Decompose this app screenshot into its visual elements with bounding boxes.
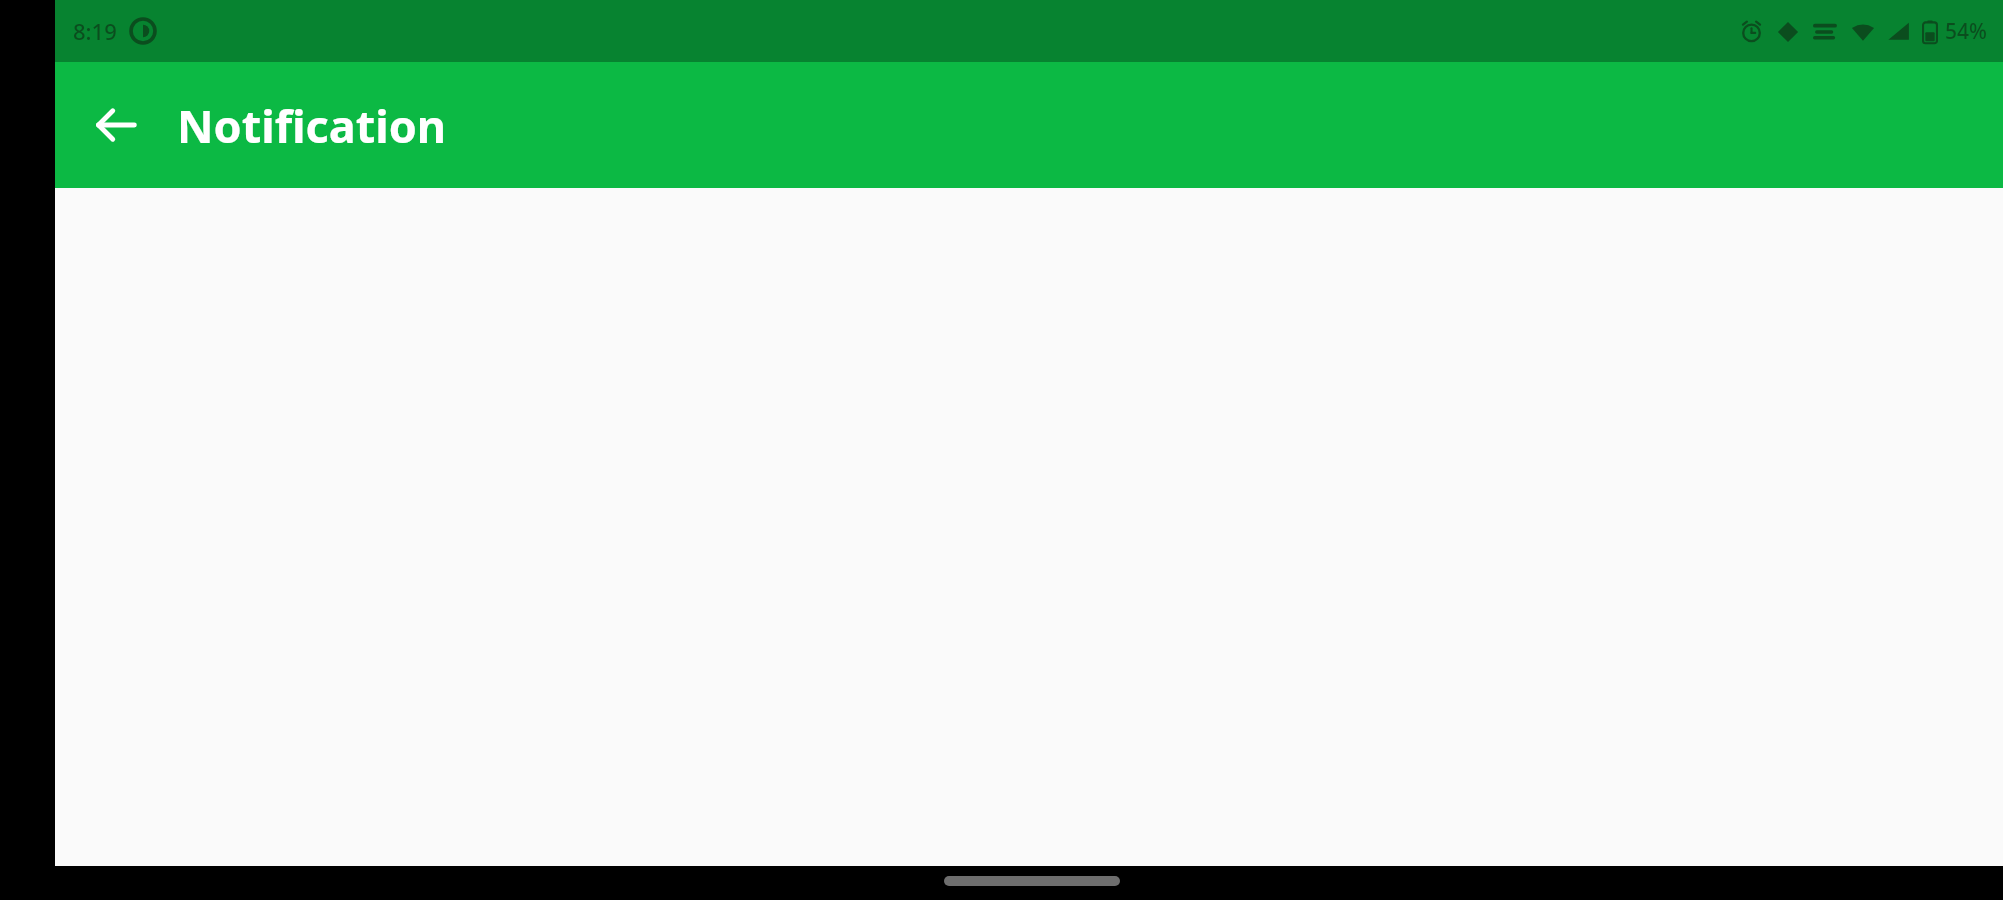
staticText: 54%: [1945, 17, 1987, 46]
staticText: 8:19: [73, 16, 117, 46]
button[interactable]: Back: [77, 86, 155, 164]
staticText: Notification: [177, 95, 447, 156]
